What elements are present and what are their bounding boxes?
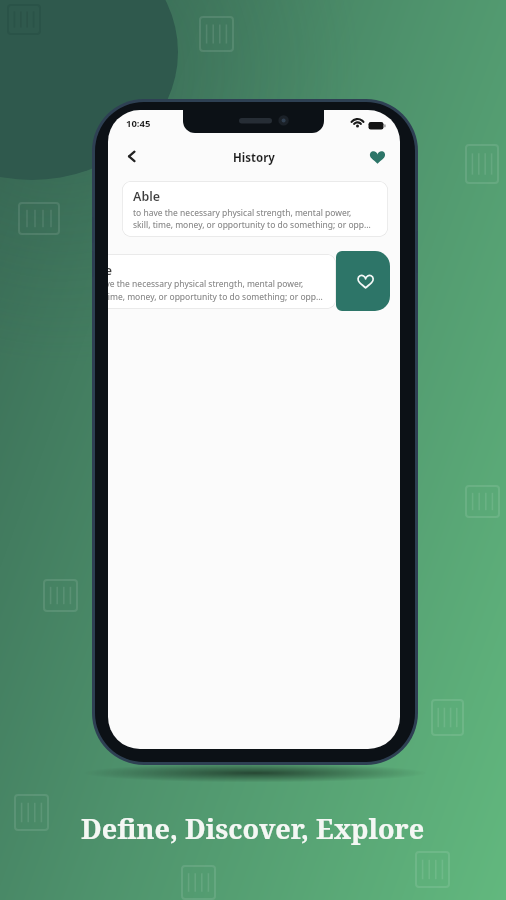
- staticText: skill, time, money, or opportunity to do…: [108, 291, 323, 303]
- staticText: to have the necessary physical strength,…: [108, 278, 304, 290]
- staticText: 10:45: [126, 117, 151, 130]
- staticText: Able: [133, 188, 161, 205]
- button[interactable]: Able: [122, 181, 388, 237]
- button[interactable]: [120, 145, 144, 169]
- staticText: Able: [108, 262, 113, 279]
- button[interactable]: [336, 251, 390, 311]
- staticText: History: [233, 150, 275, 166]
- button[interactable]: [365, 144, 390, 169]
- staticText: skill, time, money, or opportunity to do…: [133, 219, 371, 231]
- staticText: to have the necessary physical strength,…: [133, 207, 352, 219]
- staticText: Define, Discover, Explore: [81, 810, 425, 847]
- button[interactable]: Able: [108, 254, 336, 309]
